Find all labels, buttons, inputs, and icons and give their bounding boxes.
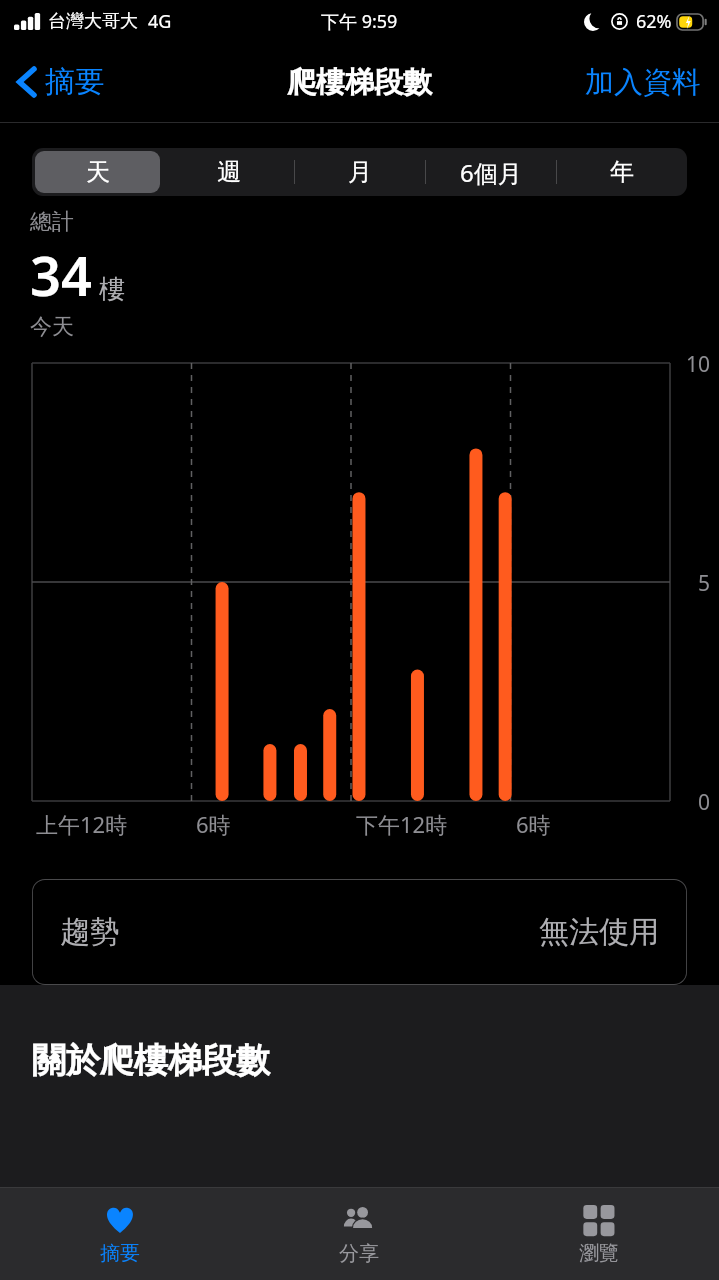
- staticText: 34: [30, 238, 92, 312]
- staticText: 加入資料: [585, 64, 701, 101]
- staticText: 分享: [339, 1241, 379, 1266]
- button[interactable]: Browse: [479, 1188, 719, 1280]
- staticText: 月: [348, 157, 372, 187]
- staticText: 今天: [30, 313, 74, 341]
- button[interactable]: 6個月: [425, 148, 556, 196]
- staticText: 10: [686, 350, 711, 379]
- staticText: 下午12時: [356, 809, 448, 839]
- staticText: 樓: [99, 273, 125, 306]
- staticText: 摘要: [100, 1241, 140, 1266]
- button[interactable]: 摘要: [0, 53, 119, 111]
- staticText: 6時: [196, 809, 231, 839]
- staticText: 4G: [148, 9, 172, 34]
- staticText: 無法使用: [539, 913, 659, 951]
- staticText: 關於爬樓梯段數: [32, 1039, 270, 1082]
- staticText: 年: [610, 157, 634, 187]
- staticText: 6時: [516, 809, 551, 839]
- staticText: 天: [86, 157, 110, 187]
- staticText: 摘要: [45, 63, 105, 101]
- staticText: 總計: [30, 208, 74, 236]
- staticText: 上午12時: [36, 809, 128, 839]
- button[interactable]: Sharing: [239, 1188, 479, 1280]
- staticText: 趨勢: [60, 913, 120, 951]
- staticText: 5: [698, 569, 711, 598]
- staticText: 台灣大哥大: [48, 10, 138, 33]
- button[interactable]: 天: [32, 148, 163, 196]
- staticText: 瀏覽: [579, 1241, 619, 1266]
- button[interactable]: 月: [294, 148, 425, 196]
- button[interactable]: Summary: [0, 1188, 239, 1280]
- button[interactable]: 趨勢: [32, 879, 687, 985]
- staticText: 週: [217, 157, 241, 187]
- staticText: 0: [698, 788, 711, 817]
- button[interactable]: 週: [163, 148, 294, 196]
- staticText: 6個月: [460, 156, 522, 189]
- button[interactable]: 加入資料: [567, 54, 719, 111]
- staticText: 62%: [636, 9, 672, 34]
- staticText: 下午 9:59: [321, 9, 398, 34]
- button[interactable]: 年: [556, 148, 687, 196]
- staticText: 爬樓梯段數: [287, 64, 432, 101]
